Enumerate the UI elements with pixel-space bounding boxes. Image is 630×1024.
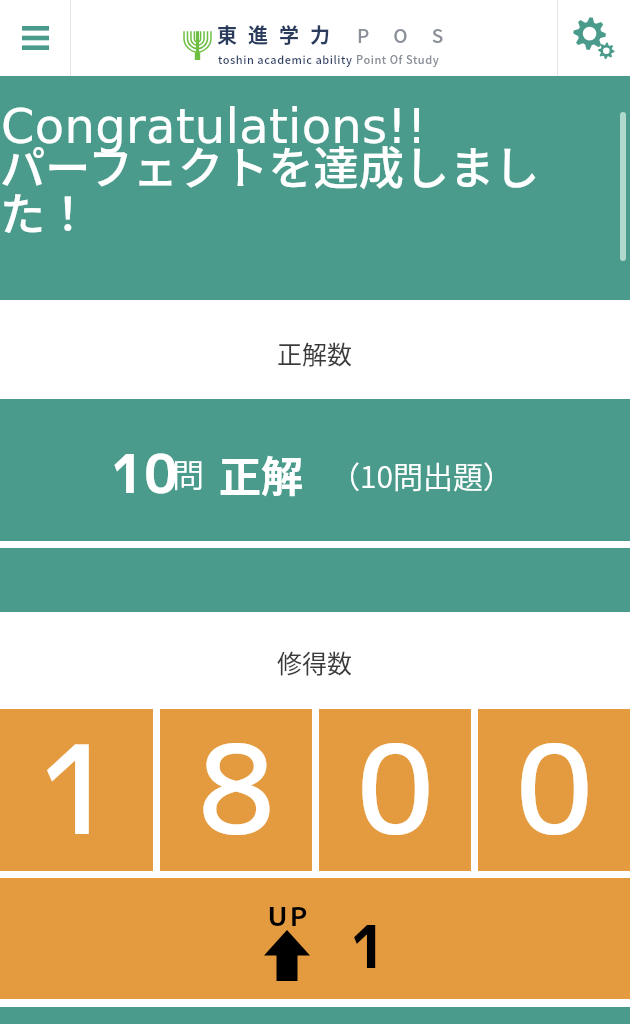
staticText: Point Of Study	[356, 51, 440, 67]
staticText: た！	[0, 179, 91, 244]
staticText: パーフェクトを達成しまし	[0, 133, 540, 198]
staticText: 0	[516, 703, 593, 865]
button[interactable]: Menu	[0, 0, 70, 76]
staticText: toshin academic ability	[218, 51, 356, 67]
staticText: UP	[268, 897, 310, 935]
staticText: 問	[172, 450, 205, 496]
staticText: Congratulations!!	[1, 98, 427, 154]
staticText: 正解	[219, 443, 304, 504]
button[interactable]: Settings	[558, 0, 630, 76]
staticText: 0	[357, 703, 434, 865]
staticText: （10問出題）	[330, 453, 513, 496]
staticText: 10	[111, 437, 178, 510]
staticText: POS	[357, 21, 468, 49]
staticText: 東進学力	[217, 20, 341, 49]
staticText: 修得数	[277, 644, 353, 680]
staticText: 正解数	[277, 335, 353, 371]
staticText: 1	[38, 703, 115, 865]
staticText: 8	[198, 703, 275, 865]
staticText: 1	[350, 906, 388, 987]
